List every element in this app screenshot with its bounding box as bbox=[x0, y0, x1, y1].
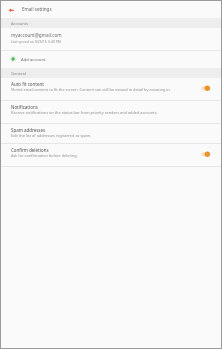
button[interactable]: Confirm deletions bbox=[1, 143, 221, 166]
staticText: Spam addresses bbox=[11, 127, 46, 133]
staticText: Notifications bbox=[11, 104, 38, 110]
button[interactable]: Back bbox=[1, 1, 17, 18]
button[interactable]: Toggle Auto fit content bbox=[199, 83, 213, 93]
staticText: Last synced on 9/25/16 6:40 PM bbox=[11, 39, 61, 43]
button[interactable]: myaccount@gmail.com bbox=[1, 28, 221, 50]
button[interactable]: Toggle Confirm deletions bbox=[199, 149, 213, 159]
staticText: Edit the list of addresses registered as… bbox=[11, 133, 92, 138]
staticText: myaccount@gmail.com bbox=[11, 32, 62, 38]
staticText: Ask for confirmation before deleting. bbox=[11, 153, 78, 158]
staticText: Auto fit content bbox=[11, 81, 44, 87]
staticText: General bbox=[11, 71, 26, 76]
button[interactable]: Add account bbox=[1, 50, 221, 69]
staticText: Add account bbox=[21, 57, 46, 63]
staticText: Confirm deletions bbox=[11, 147, 49, 153]
button[interactable]: Notifications bbox=[1, 100, 221, 123]
staticText: Email settings bbox=[22, 6, 52, 12]
staticText: Receive notifications on the status bar … bbox=[11, 110, 158, 115]
button[interactable]: Spam addresses bbox=[1, 123, 221, 144]
staticText: Shrink email content to fit the screen. … bbox=[11, 87, 171, 92]
button[interactable]: Auto fit content bbox=[1, 77, 221, 100]
staticText: Accounts bbox=[11, 21, 29, 26]
